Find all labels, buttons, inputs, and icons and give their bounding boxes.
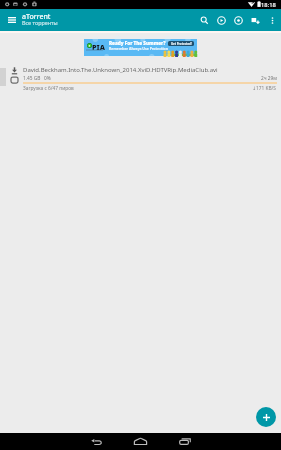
button[interactable]: Resume all — [213, 9, 230, 31]
staticText: 1.45 GB — [23, 75, 41, 82]
button[interactable]: Back — [78, 433, 114, 450]
button[interactable]: Add torrent file — [247, 9, 264, 31]
staticText: Ready For The Summer? — [109, 40, 166, 46]
staticText: aTorrent — [22, 11, 51, 21]
staticText: 2ч 29м — [261, 75, 277, 82]
button[interactable]: Home — [122, 433, 158, 450]
staticText: 18:18 — [261, 1, 276, 9]
button[interactable]: David.Beckham.Into.The.Unknown_2014.XviD… — [0, 59, 281, 99]
button[interactable]: Get Protected! — [168, 41, 194, 46]
staticText: Все торренты — [22, 19, 58, 26]
button[interactable]: Recent apps — [167, 433, 203, 450]
staticText: Get Protected! — [171, 42, 192, 46]
button[interactable]: Open navigation drawer — [3, 9, 20, 31]
button[interactable]: Search — [196, 9, 213, 31]
staticText: Remember Always Use Protection — [109, 46, 168, 51]
staticText: ↓171 KB/S — [252, 85, 277, 92]
button[interactable]: Add torrent — [256, 407, 276, 427]
staticText: 0% — [44, 75, 51, 82]
staticText: Загрузка с 6/47 пиров — [23, 85, 74, 92]
staticText: David.Beckham.Into.The.Unknown_2014.XviD… — [23, 66, 218, 74]
button[interactable]: More options — [264, 9, 281, 31]
staticText: PIA — [92, 42, 105, 52]
button[interactable]: Stop all — [230, 9, 247, 31]
